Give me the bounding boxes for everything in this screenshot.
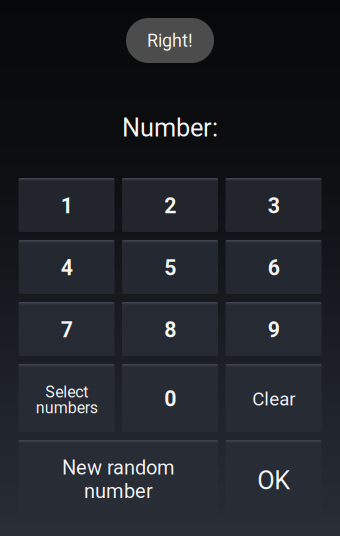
button[interactable]: 6 (225, 240, 321, 294)
staticText: Right! (147, 30, 193, 51)
staticText: Select numbers (35, 383, 97, 417)
button[interactable]: 4 (18, 240, 114, 294)
button[interactable]: 0 (122, 364, 218, 432)
staticText: 4 (60, 255, 72, 280)
staticText: 8 (164, 317, 176, 342)
staticText: 7 (60, 317, 72, 342)
staticText: Clear (252, 388, 295, 410)
button[interactable]: OK (225, 440, 321, 517)
button[interactable]: Clear (225, 364, 321, 432)
staticText: 6 (267, 255, 279, 280)
button[interactable]: 1 (18, 178, 114, 232)
staticText: 0 (164, 386, 176, 411)
staticText: 2 (164, 193, 176, 218)
staticText: Number: (122, 113, 218, 143)
button[interactable]: 3 (225, 178, 321, 232)
staticText: OK (257, 466, 290, 495)
staticText: 5 (164, 255, 176, 280)
button[interactable]: New random number (18, 440, 218, 517)
button[interactable]: 2 (122, 178, 218, 232)
button[interactable]: 5 (122, 240, 218, 294)
button[interactable]: 9 (225, 302, 321, 356)
staticText: New random number (62, 456, 175, 503)
staticText: 9 (267, 317, 279, 342)
button[interactable]: Select numbers (18, 364, 114, 432)
button[interactable]: 8 (122, 302, 218, 356)
button[interactable]: Right! (126, 18, 214, 63)
staticText: 1 (60, 193, 72, 218)
staticText: 3 (267, 193, 279, 218)
button[interactable]: 7 (18, 302, 114, 356)
